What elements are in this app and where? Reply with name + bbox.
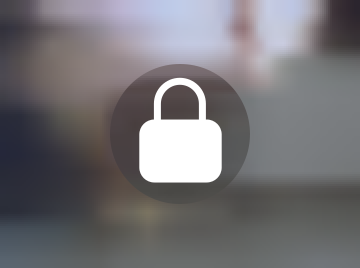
button[interactable]: Unlock bbox=[110, 64, 250, 204]
